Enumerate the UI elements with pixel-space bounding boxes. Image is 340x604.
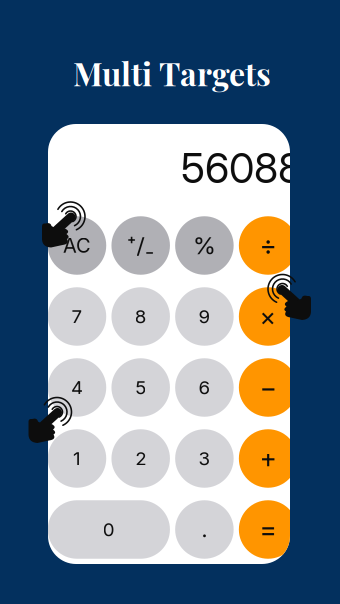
- button[interactable]: −: [239, 358, 297, 417]
- staticText: 6: [198, 376, 210, 399]
- staticText: 7: [71, 305, 82, 328]
- staticText: +: [260, 442, 277, 475]
- button[interactable]: 1: [48, 429, 106, 488]
- staticText: −: [260, 371, 277, 404]
- button[interactable]: ⁺∕₋: [111, 216, 170, 275]
- button[interactable]: 7: [48, 287, 106, 346]
- staticText: 3: [198, 447, 210, 470]
- staticText: 56088: [181, 143, 302, 193]
- staticText: ÷: [260, 229, 277, 262]
- staticText: 4: [71, 376, 83, 399]
- staticText: 1: [73, 447, 81, 470]
- staticText: 9: [198, 305, 210, 328]
- button[interactable]: 8: [111, 287, 170, 346]
- staticText: 2: [135, 447, 146, 470]
- staticText: 5: [135, 376, 146, 399]
- button[interactable]: 4: [48, 358, 106, 417]
- staticText: %: [193, 231, 216, 260]
- button[interactable]: =: [239, 500, 297, 559]
- button[interactable]: 5: [111, 358, 170, 417]
- button[interactable]: 0: [48, 500, 170, 559]
- button[interactable]: .: [175, 500, 234, 559]
- button[interactable]: +: [239, 429, 297, 488]
- button[interactable]: 9: [175, 287, 234, 346]
- button[interactable]: ÷: [239, 216, 297, 275]
- button[interactable]: %: [175, 216, 234, 275]
- staticText: .: [201, 517, 207, 542]
- button[interactable]: AC: [48, 216, 106, 275]
- staticText: ×: [260, 301, 277, 332]
- staticText: 0: [103, 518, 115, 541]
- staticText: ⁺∕₋: [127, 232, 155, 259]
- staticText: Multi Targets: [73, 52, 271, 94]
- staticText: =: [260, 513, 277, 546]
- button[interactable]: 3: [175, 429, 234, 488]
- button[interactable]: ×: [239, 287, 297, 346]
- staticText: AC: [63, 233, 91, 258]
- button[interactable]: 2: [111, 429, 170, 488]
- button[interactable]: 6: [175, 358, 234, 417]
- staticText: 8: [135, 305, 147, 328]
